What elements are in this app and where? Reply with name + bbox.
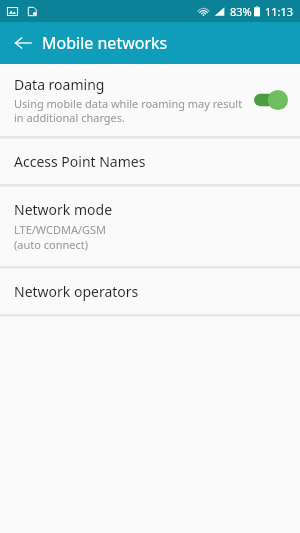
button[interactable]: Network mode xyxy=(0,187,300,266)
staticText: Network mode xyxy=(14,200,113,219)
staticText: 83% xyxy=(230,4,252,19)
button[interactable]: Navigate up xyxy=(10,30,36,56)
staticText: Data roaming xyxy=(14,75,105,94)
staticText: Access Point Names xyxy=(14,152,146,171)
button[interactable]: Data roaming xyxy=(0,64,300,136)
staticText: Mobile networks xyxy=(42,32,168,54)
button[interactable]: Data roaming on xyxy=(254,89,288,111)
button[interactable]: Access Point Names xyxy=(0,139,300,184)
staticText: Network operators xyxy=(14,282,139,301)
button[interactable]: Network operators xyxy=(0,269,300,314)
staticText: LTE/WCDMA/GSM xyxy=(14,222,107,237)
staticText: 11:13 xyxy=(265,4,294,19)
staticText: (auto connect) xyxy=(14,237,89,252)
staticText: Using mobile data while roaming may resu… xyxy=(14,96,246,125)
